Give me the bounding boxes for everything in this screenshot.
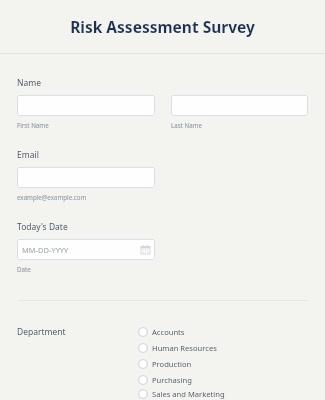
staticText: Department <box>17 326 66 338</box>
staticText: Purchasing <box>152 375 192 385</box>
button[interactable]: Production <box>138 356 308 372</box>
button[interactable] <box>171 95 308 116</box>
staticText: Production <box>152 359 192 369</box>
staticText: Email <box>17 149 39 161</box>
button[interactable] <box>17 167 155 188</box>
staticText: MM-DD-YYYY <box>22 245 69 255</box>
button[interactable]: Accounts <box>138 324 308 340</box>
staticText: Name <box>17 77 41 89</box>
staticText: Human Resources <box>152 343 217 353</box>
staticText: Sales and Marketing <box>152 389 225 399</box>
button[interactable]: Human Resources <box>138 340 308 356</box>
button[interactable]: Purchasing <box>138 372 308 388</box>
button[interactable]: MM-DD-YYYY <box>17 239 155 260</box>
staticText: Risk Assessment Survey <box>70 16 255 37</box>
staticText: Last Name <box>171 121 202 129</box>
staticText: Date <box>17 265 31 273</box>
staticText: First Name <box>17 121 49 129</box>
button[interactable]: Open calendar <box>141 245 150 254</box>
button[interactable] <box>17 95 155 116</box>
staticText: example@example.com <box>17 193 87 201</box>
button[interactable]: Sales and Marketing <box>138 388 308 400</box>
staticText: Today's Date <box>17 221 68 233</box>
staticText: Accounts <box>152 327 185 337</box>
